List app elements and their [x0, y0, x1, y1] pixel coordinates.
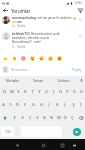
button[interactable]: Emoji	[19, 54, 28, 63]
button[interactable]: Emoji	[46, 54, 55, 63]
button[interactable]: J	[45, 98, 53, 111]
staticText: D	[16, 102, 19, 107]
staticText: İ	[80, 102, 82, 107]
staticText: N	[50, 115, 53, 120]
button[interactable]: Home	[38, 140, 48, 150]
button[interactable]: G	[29, 98, 37, 111]
staticText: A	[2, 102, 5, 107]
staticText: I	[53, 89, 55, 94]
staticText: Ç	[71, 115, 74, 120]
button[interactable]: X	[18, 111, 26, 124]
button[interactable]: Y	[36, 85, 43, 98]
button[interactable]: D	[14, 98, 21, 111]
button[interactable]: Emoji	[55, 54, 64, 63]
staticText: V	[36, 115, 39, 120]
staticText: H	[40, 102, 43, 107]
button[interactable]: Recents	[57, 140, 67, 150]
button[interactable]: T	[29, 85, 36, 98]
staticText: Yorumlar	[11, 8, 31, 14]
button[interactable]: Like	[77, 16, 83, 22]
button[interactable]: Ğ	[71, 85, 78, 98]
button[interactable]: Comma	[14, 126, 21, 137]
button[interactable]: Switch keyboard	[69, 140, 79, 150]
button[interactable]: R	[22, 85, 29, 98]
button[interactable]: M	[55, 111, 62, 124]
staticText: C	[29, 115, 32, 120]
button[interactable]: Q	[0, 85, 8, 98]
staticText: Ö	[64, 115, 67, 120]
staticText: Yanitla	[17, 24, 26, 28]
button[interactable]: İ	[77, 98, 85, 111]
staticText: ,	[17, 130, 18, 134]
button[interactable]: uzmanpsikolog	[2, 16, 83, 30]
button[interactable]: Ş	[69, 98, 77, 111]
staticText: M	[57, 115, 61, 120]
button[interactable]: H	[37, 98, 45, 111]
button[interactable]: Back	[0, 6, 11, 15]
staticText: K	[56, 102, 59, 107]
staticText: Yorum ekle...	[11, 68, 71, 72]
staticText: T	[31, 89, 34, 94]
staticText: X	[21, 115, 24, 120]
staticText: L	[64, 102, 66, 107]
staticText: Ş	[72, 102, 75, 107]
staticText: E	[17, 89, 20, 94]
staticText: ?123	[5, 130, 11, 134]
button[interactable]: Shift	[0, 111, 10, 124]
button[interactable]: V	[34, 111, 41, 124]
button[interactable]: Merhaba	[0, 76, 25, 85]
button[interactable]: K	[53, 98, 61, 111]
button[interactable]: A	[0, 98, 7, 111]
staticText: Q	[3, 89, 6, 94]
button[interactable]: W	[8, 85, 15, 98]
button[interactable]: Ö	[62, 111, 69, 124]
staticText: 2s	[12, 45, 15, 49]
staticText: cok ise yarar bi anlatim	[37, 16, 72, 20]
button[interactable]: F	[21, 98, 29, 111]
staticText: Merhaba	[6, 79, 19, 83]
button[interactable]: Hide keyboard	[12, 140, 22, 150]
button[interactable]: Kullanıcı	[51, 76, 77, 85]
button[interactable]: I	[50, 85, 57, 98]
button[interactable]: B	[41, 111, 48, 124]
staticText: O	[59, 89, 62, 94]
staticText: .	[65, 130, 66, 134]
button[interactable]: Paylaş	[71, 67, 83, 73]
button[interactable]: kelebek723	[2, 32, 83, 50]
staticText: F	[24, 102, 26, 107]
staticText: P	[66, 89, 69, 94]
button[interactable]: O	[57, 85, 64, 98]
button[interactable]: Share	[75, 6, 85, 15]
staticText: kelebek723	[12, 32, 30, 36]
staticText: Bimuafoooleri pulk	[31, 32, 60, 36]
button[interactable]: Voice input	[77, 76, 85, 85]
button[interactable]: P	[64, 85, 71, 98]
button[interactable]: ?123	[1, 126, 14, 137]
button[interactable]: U	[43, 85, 50, 98]
staticText: R	[24, 89, 27, 94]
button[interactable]: Like	[77, 32, 83, 38]
button[interactable]: Emoji	[37, 54, 46, 63]
staticText: Ğ	[73, 89, 76, 94]
button[interactable]: L	[61, 98, 69, 111]
staticText: Kullanıcı	[58, 79, 70, 83]
button[interactable]: Ü	[78, 85, 85, 98]
staticText: 12:52	[74, 1, 83, 5]
button[interactable]: Emoji	[10, 54, 19, 63]
button[interactable]: C	[26, 111, 34, 124]
staticText: Z	[13, 115, 16, 120]
button[interactable]: Ç	[69, 111, 76, 124]
staticText: Ü	[80, 89, 83, 94]
staticText: U	[45, 89, 48, 94]
button[interactable]: Z	[10, 111, 18, 124]
button[interactable]: Tamam	[25, 76, 51, 85]
button[interactable]: Backspace	[76, 111, 85, 124]
button[interactable]: E	[15, 85, 22, 98]
button[interactable]: Emoji	[1, 54, 10, 63]
button[interactable]: N	[48, 111, 55, 124]
button[interactable]: S	[7, 98, 14, 111]
button[interactable]: Send	[73, 128, 81, 136]
button[interactable]: Emoji	[28, 54, 37, 63]
